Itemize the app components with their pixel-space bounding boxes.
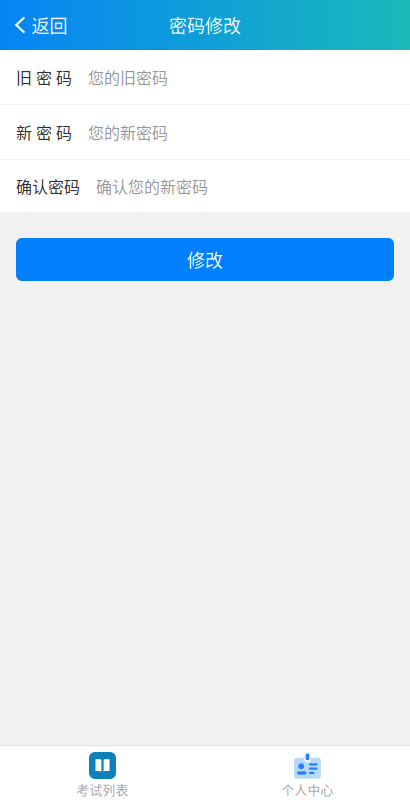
staticText: 旧 密 码 — [16, 65, 72, 89]
button[interactable]: 修改 — [16, 238, 394, 281]
staticText: 考试列表 — [76, 780, 128, 798]
button[interactable]: 新 密 码，您的新密码 — [0, 105, 410, 159]
staticText: 确认您的新密码 — [96, 174, 208, 198]
staticText: 个人中心 — [281, 780, 333, 798]
staticText: 您的旧密码 — [88, 65, 168, 89]
button[interactable]: 返回 — [0, 0, 78, 50]
staticText: 新 密 码 — [16, 120, 72, 144]
staticText: 返回 — [32, 12, 68, 38]
button[interactable]: 个人中心 — [205, 746, 410, 800]
button[interactable]: 确认密码，确认您的新密码 — [0, 160, 410, 212]
button[interactable]: 旧 密 码，您的旧密码 — [0, 50, 410, 104]
button[interactable]: 考试列表 — [0, 746, 205, 800]
staticText: 密码修改 — [169, 12, 241, 38]
staticText: 修改 — [187, 246, 223, 273]
staticText: 您的新密码 — [88, 120, 168, 144]
staticText: 确认密码 — [16, 174, 80, 198]
